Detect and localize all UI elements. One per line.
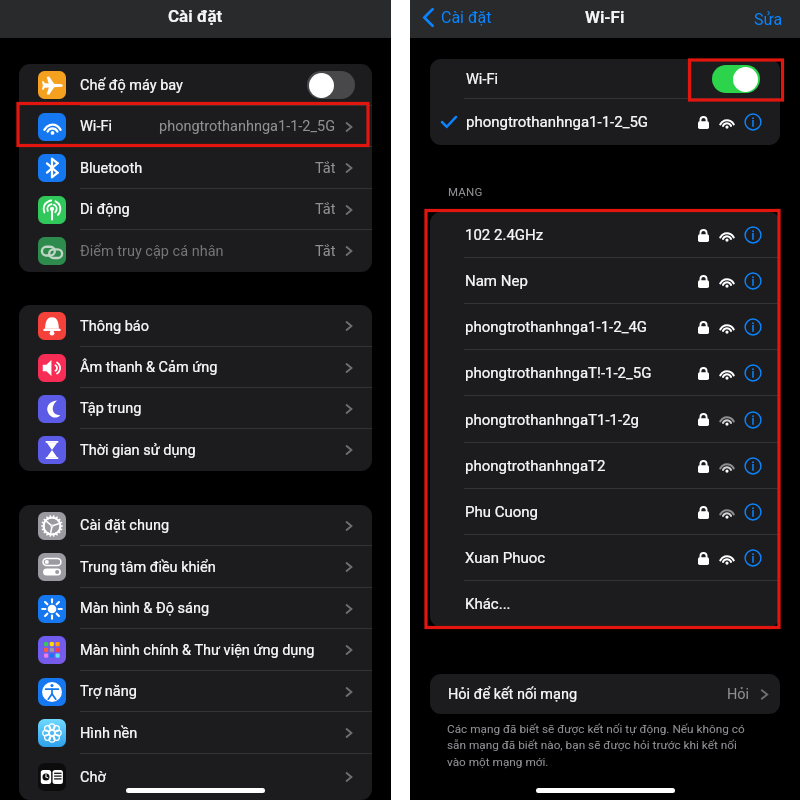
button[interactable]: Xuan Phuoc (430, 535, 780, 581)
staticText: Âm thanh & Cảm ứng (80, 359, 218, 376)
staticText: Phu Cuong (465, 503, 539, 521)
staticText: Hỏi để kết nối mạng (448, 686, 578, 703)
staticText: Màn hình & Độ sáng (80, 600, 210, 617)
staticText: Màn hình chính & Thư viện ứng dụng (80, 642, 315, 659)
staticText: MẠNG (448, 185, 483, 198)
button[interactable]: Trung tâm điều khiển (19, 546, 372, 588)
button[interactable]: Wi-Fi (19, 106, 372, 147)
button[interactable]: Chế độ máy bay (19, 64, 372, 106)
button[interactable]: Turn off (712, 65, 760, 93)
button[interactable]: Network info for 102 2.4GHz (744, 226, 762, 244)
button[interactable]: Âm thanh & Cảm ứng (19, 347, 372, 388)
staticText: phongtrothanhnga1-1-2_4G (465, 318, 648, 336)
button[interactable]: Sửa (754, 10, 783, 29)
button[interactable]: Phu Cuong (430, 489, 780, 535)
button[interactable]: Thông báo (19, 305, 372, 347)
staticText: Cài đặt (168, 6, 223, 26)
staticText: Wi-Fi (585, 7, 625, 27)
button[interactable]: phongtrothanhnga1-1-2_4G (430, 304, 780, 350)
button[interactable]: Network info for phongtrothanhngaT2 (744, 457, 762, 475)
staticText: Trợ năng (80, 683, 137, 700)
staticText: Tắt (315, 160, 336, 177)
staticText: Wi-Fi (466, 71, 498, 88)
button[interactable]: Khác... (430, 581, 780, 627)
staticText: Trung tâm điều khiển (80, 559, 216, 576)
staticText: Hình nền (80, 725, 138, 742)
button[interactable]: phongtrothanhngaT1-1-2g (430, 396, 780, 443)
button[interactable]: Cài đặt chung (19, 505, 372, 546)
staticText: Thông báo (80, 318, 149, 335)
staticText: Di động (80, 201, 130, 218)
button[interactable]: Màn hình chính & Thư viện ứng dụng (19, 629, 372, 671)
button[interactable]: phongtrothanhngaT2 (430, 443, 780, 489)
button[interactable]: 102 2.4GHz (430, 212, 780, 258)
button[interactable]: Turn on (307, 71, 355, 99)
staticText: Tập trung (80, 400, 142, 417)
button[interactable]: Thời gian sử dụng (19, 429, 372, 471)
button[interactable]: Network info for phongtrothanhngaT!-1-2_… (744, 364, 762, 382)
button[interactable]: Network info for phongtrothanhnga1-1-2_5… (744, 113, 762, 131)
staticText: Chế độ máy bay (80, 77, 183, 94)
staticText: Điểm truy cập cá nhân (80, 243, 224, 260)
button[interactable]: Back to Cài đặt (423, 8, 492, 27)
button[interactable]: Network info for phongtrothanhngaT1-1-2g (744, 411, 762, 429)
button[interactable]: phongtrothanhngaT!-1-2_5G (430, 350, 780, 396)
button[interactable]: Bluetooth (19, 147, 372, 189)
button[interactable]: Hình nền (19, 712, 372, 754)
staticText: phongtrothanhngaT1-1-2g (465, 411, 640, 429)
staticText: Hỏi (727, 686, 750, 703)
button[interactable]: Wi-Fi (430, 59, 780, 99)
button[interactable]: Màn hình & Độ sáng (19, 588, 372, 629)
button[interactable]: Trợ năng (19, 671, 372, 712)
staticText: Wi-Fi (80, 118, 112, 135)
button[interactable]: Di động (19, 189, 372, 230)
button[interactable]: Chờ (19, 754, 372, 800)
button[interactable]: Network info for phongtrothanhnga1-1-2_4… (744, 318, 762, 336)
button[interactable]: Network info for Nam Nep (744, 272, 762, 290)
staticText: phongtrothanhngaT!-1-2_5G (465, 364, 652, 382)
button[interactable]: Tập trung (19, 388, 372, 429)
button[interactable]: phongtrothanhnga1-1-2_5G (430, 99, 780, 145)
staticText: phongtrothanhngaT2 (465, 457, 606, 475)
button[interactable]: Network info for Xuan Phuoc (744, 549, 762, 567)
staticText: Thời gian sử dụng (80, 442, 196, 459)
staticText: 102 2.4GHz (465, 226, 544, 244)
staticText: Bluetooth (80, 160, 143, 177)
staticText: Tắt (315, 243, 336, 260)
button[interactable]: Hỏi để kết nối mạng (430, 674, 780, 714)
staticText: Chờ (80, 769, 106, 786)
staticText: Cài đặt (441, 8, 492, 27)
staticText: Nam Nep (465, 272, 528, 290)
staticText: Các mạng đã biết sẽ được kết nối tự động… (447, 722, 757, 769)
button[interactable]: Điểm truy cập cá nhân (19, 230, 372, 272)
staticText: Xuan Phuoc (465, 549, 546, 567)
button[interactable]: Nam Nep (430, 258, 780, 304)
staticText: phongtrothanhnga1-1-2_5G (159, 118, 336, 135)
staticText: phongtrothanhnga1-1-2_5G (466, 113, 649, 131)
button[interactable]: Network info for Phu Cuong (744, 503, 762, 521)
staticText: Tắt (315, 201, 336, 218)
staticText: Cài đặt chung (80, 517, 170, 534)
staticText: Khác... (465, 595, 511, 613)
